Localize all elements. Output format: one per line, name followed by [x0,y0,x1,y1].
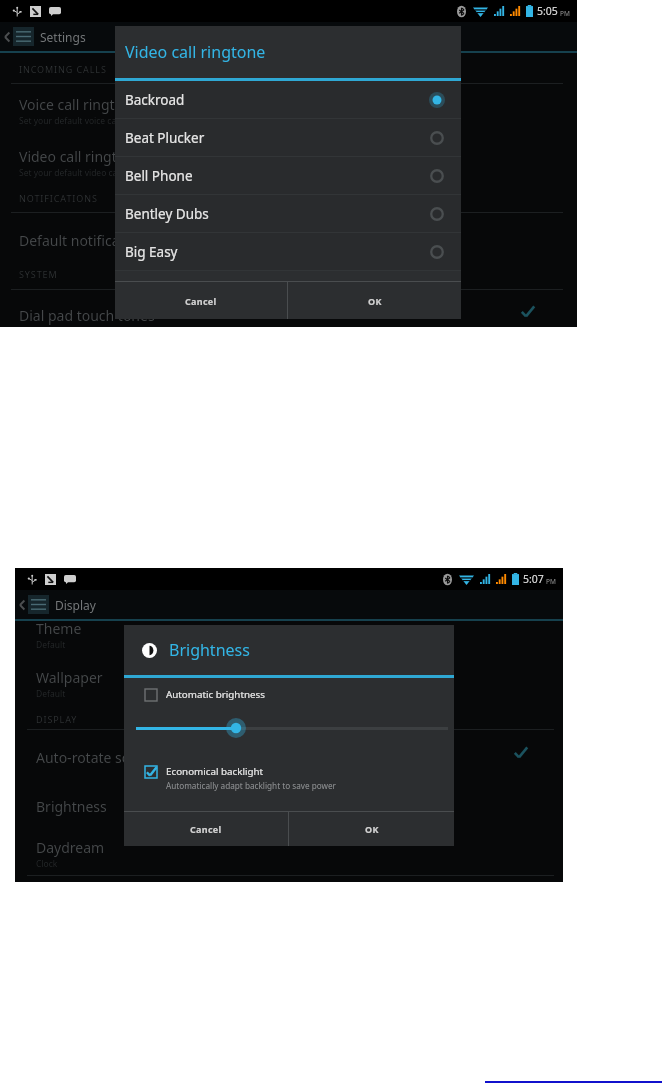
other: SIM 1 signal [494,6,505,16]
staticText: Dial pad touch tones [19,306,155,325]
other: Wi-Fi signal [459,574,474,585]
button[interactable]: Backroad [115,81,461,119]
button[interactable]: Daydream [36,838,105,870]
other: Screenshot captured [45,574,56,585]
other: Bluetooth on [457,5,466,18]
button[interactable]: Theme [36,619,82,651]
staticText: NOTIFICATIONS [19,192,98,204]
staticText: Display [55,597,96,613]
staticText: Cancel [190,823,222,835]
button[interactable]: Auto-rotate screen [36,748,159,767]
staticText: Automatically adapt backlight to save po… [166,780,336,791]
staticText: SYSTEM [19,268,58,280]
other: New message [49,7,61,16]
staticText: Set your default voice call ringtone [19,115,158,127]
button[interactable]: OK [288,282,461,319]
other: USB connected [12,7,22,17]
staticText: Cancel [185,295,217,307]
button[interactable]: Bell Phone [115,157,461,195]
button[interactable]: Wallpaper [36,668,103,700]
button[interactable]: Brightness [36,797,107,816]
staticText: Auto-rotate screen [36,748,159,767]
staticText: OK [368,295,382,307]
button[interactable]: OK [289,812,454,846]
staticText: PM [560,9,570,18]
staticText: Default [36,688,66,700]
button[interactable]: Brightness level [124,718,454,738]
staticText: 5:05 [537,4,558,18]
staticText: Clock [36,858,58,870]
button[interactable]: Navigate up [0,27,94,46]
staticText: Brightness [36,797,107,816]
staticText: Big Easy [125,243,178,261]
other: USB connected [27,575,37,585]
button[interactable]: Navigate up [15,595,104,614]
button[interactable]: Cancel [115,282,287,319]
staticText: Bell Phone [125,167,193,185]
staticText: Brightness [169,639,250,661]
other: Wi-Fi signal [473,6,488,17]
other: SIM 1 signal [480,574,491,584]
other: SIM 2 signal [496,574,507,584]
staticText: Default notification sound [19,231,191,250]
other: New message [64,575,76,584]
staticText: Daydream [36,838,105,857]
staticText: Bentley Dubs [125,205,209,223]
staticText: OK [365,823,379,835]
other: SIM 2 signal [510,6,521,16]
button[interactable]: Voice call ringtone [19,95,158,127]
staticText: Economical backlight [166,765,264,778]
other: Screenshot captured [30,6,41,17]
other: Bluetooth on [443,573,452,586]
staticText: Beat Plucker [125,129,205,147]
staticText: Video call ringtone [19,147,142,166]
staticText: Backroad [125,91,185,109]
button[interactable]: Economical backlight [124,765,454,791]
staticText: Settings [40,29,86,45]
staticText: Voice call ringtone [19,95,140,114]
staticText: PM [546,577,556,586]
button[interactable]: Beat Plucker [115,119,461,157]
staticText: Set your default video call ringtone [19,167,159,179]
staticText: INCOMING CALLS [19,63,107,75]
other: Battery [512,573,519,585]
button[interactable]: Bentley Dubs [115,195,461,233]
staticText: Automatic brightness [166,688,265,701]
button[interactable]: Dial pad touch tones [19,306,155,325]
staticText: Wallpaper [36,668,103,687]
button[interactable]: Default notification sound [19,231,191,250]
staticText: 5:07 [523,572,544,586]
staticText: Default [36,639,66,651]
button[interactable]: Big Easy [115,233,461,271]
other: Battery [526,5,533,17]
staticText: DISPLAY [36,713,78,725]
staticText: Theme [36,619,82,638]
button[interactable]: Automatic brightness [124,688,454,701]
button[interactable]: Cancel [124,812,288,846]
button[interactable]: Video call ringtone [19,147,159,179]
staticText: Video call ringtone [125,41,266,63]
